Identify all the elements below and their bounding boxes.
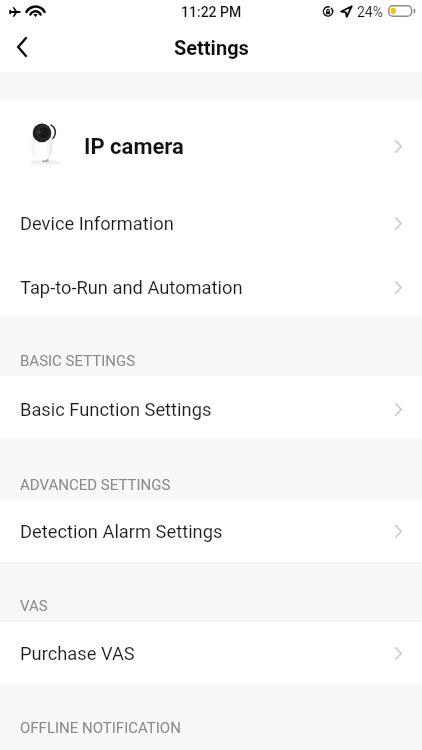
staticText: OFFLINE NOTIFICATION bbox=[20, 719, 181, 737]
staticText: Purchase VAS bbox=[20, 643, 135, 664]
button[interactable]: Purchase VAS bbox=[0, 622, 422, 684]
staticText: Basic Function Settings bbox=[20, 399, 212, 420]
button[interactable]: Basic Function Settings bbox=[0, 376, 422, 439]
button[interactable]: IP camera bbox=[0, 101, 422, 192]
button[interactable]: Tap-to-Run and Automation bbox=[0, 255, 422, 317]
staticText: Device Information bbox=[20, 213, 174, 234]
staticText: 24% bbox=[357, 4, 383, 20]
staticText: IP camera bbox=[84, 134, 184, 160]
staticText: Settings bbox=[174, 36, 249, 59]
button[interactable]: Device Information bbox=[0, 192, 422, 255]
button[interactable]: Back bbox=[0, 25, 44, 69]
staticText: Tap-to-Run and Automation bbox=[20, 277, 243, 298]
staticText: 11:22 PM bbox=[181, 4, 242, 20]
staticText: ADVANCED SETTINGS bbox=[20, 476, 171, 494]
button[interactable]: Detection Alarm Settings bbox=[0, 500, 422, 562]
staticText: Detection Alarm Settings bbox=[20, 521, 223, 542]
staticText: VAS bbox=[20, 597, 48, 615]
staticText: BASIC SETTINGS bbox=[20, 352, 136, 370]
